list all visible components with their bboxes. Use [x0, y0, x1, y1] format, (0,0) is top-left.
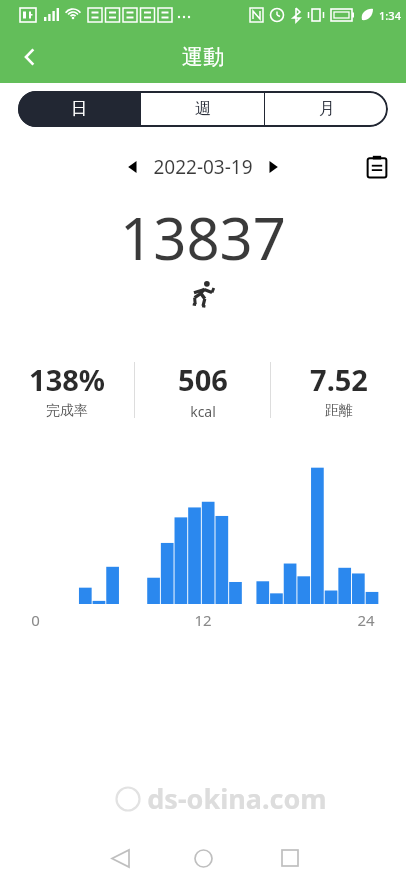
staticText: 24: [357, 610, 375, 630]
button[interactable]: Next day: [258, 152, 288, 182]
button[interactable]: Recent apps: [270, 838, 310, 878]
staticText: 2022-03-19: [153, 154, 253, 180]
button[interactable]: 日: [18, 91, 140, 127]
staticText: 7.52: [310, 360, 368, 399]
button[interactable]: 7.52: [271, 360, 406, 420]
button[interactable]: 138%: [0, 360, 134, 420]
staticText: 506: [178, 360, 228, 399]
staticText: 月: [319, 99, 335, 119]
staticText: 完成率: [46, 402, 88, 420]
button[interactable]: Records: [360, 150, 394, 184]
button[interactable]: Back: [100, 838, 140, 878]
staticText: 138%: [29, 360, 105, 399]
staticText: 13837: [120, 198, 286, 270]
staticText: 12: [194, 610, 212, 630]
staticText: 距離: [325, 402, 353, 420]
staticText: 運動: [182, 44, 224, 70]
button[interactable]: Back: [8, 35, 52, 79]
button[interactable]: Home: [183, 838, 223, 878]
staticText: kcal: [190, 402, 216, 421]
staticText: 0: [31, 610, 40, 630]
staticText: 1:34: [379, 8, 401, 23]
staticText: 日: [71, 99, 87, 119]
staticText: ds-okina.com: [147, 780, 327, 817]
staticText: 週: [195, 99, 211, 119]
button[interactable]: Previous day: [118, 152, 148, 182]
button[interactable]: 月: [265, 91, 388, 127]
button[interactable]: 506: [135, 360, 270, 421]
button[interactable]: 週: [141, 91, 264, 127]
